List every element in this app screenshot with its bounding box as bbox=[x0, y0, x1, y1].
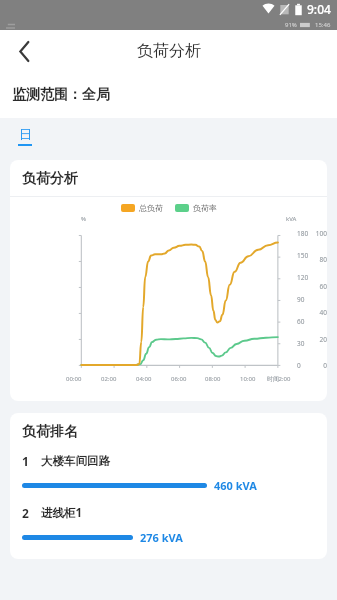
staticText: 0 bbox=[297, 361, 301, 370]
staticText: 12:00 bbox=[275, 375, 291, 383]
staticText: 10:00 bbox=[240, 375, 256, 383]
button[interactable]: 日 bbox=[18, 126, 32, 146]
staticText: 负荷分析 bbox=[22, 170, 78, 188]
staticText: 60 bbox=[297, 317, 305, 326]
staticText: 120 bbox=[297, 273, 309, 282]
staticText: 60 bbox=[319, 282, 327, 291]
staticText: 负荷率 bbox=[193, 203, 217, 213]
staticText: 80 bbox=[319, 255, 327, 264]
staticText: 02:00 bbox=[101, 375, 117, 383]
staticText: 30 bbox=[297, 339, 305, 348]
staticText: 06:00 bbox=[171, 375, 187, 383]
staticText: 90 bbox=[297, 295, 305, 304]
staticText: 负荷分析 bbox=[137, 41, 201, 61]
button[interactable]: Back bbox=[4, 31, 44, 71]
staticText: 总负荷 bbox=[139, 203, 163, 213]
staticText: 15:46 bbox=[315, 21, 331, 29]
staticText: 00:00 bbox=[66, 375, 82, 383]
staticText: 9:04 bbox=[307, 1, 331, 17]
staticText: 40 bbox=[319, 308, 327, 317]
staticText: 时间 bbox=[267, 375, 279, 383]
staticText: % bbox=[81, 215, 86, 223]
staticText: 大楼车间回路 bbox=[41, 454, 110, 468]
staticText: 180 bbox=[297, 229, 309, 238]
staticText: 2 bbox=[22, 505, 29, 521]
staticText: 08:00 bbox=[205, 375, 221, 383]
staticText: 460 kVA bbox=[214, 478, 257, 493]
button[interactable]: 2 bbox=[22, 505, 315, 545]
staticText: 100 bbox=[315, 229, 327, 238]
staticText: kVA bbox=[286, 215, 297, 223]
staticText: 04:00 bbox=[136, 375, 152, 383]
button[interactable]: 监测范围：全局 bbox=[0, 72, 337, 118]
staticText: 20 bbox=[319, 335, 327, 344]
staticText: 91% bbox=[285, 21, 297, 29]
staticText: 进线柜1 bbox=[41, 505, 83, 521]
staticText: 0 bbox=[323, 361, 327, 370]
staticText: 监测范围：全局 bbox=[12, 86, 110, 104]
staticText: 150 bbox=[297, 251, 309, 260]
staticText: 日 bbox=[19, 126, 32, 142]
button[interactable]: 1 bbox=[22, 453, 315, 493]
staticText: 276 kVA bbox=[140, 530, 183, 545]
staticText: 负荷排名 bbox=[22, 423, 78, 441]
staticText: 1 bbox=[22, 453, 29, 469]
